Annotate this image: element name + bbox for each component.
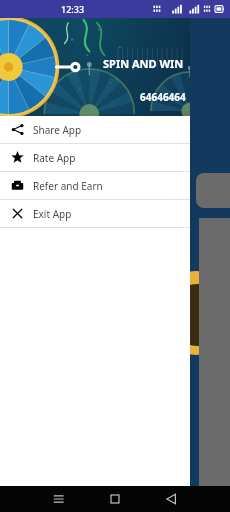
button[interactable]: Rate App	[0, 144, 190, 171]
button[interactable]: Refer and Earn	[0, 172, 190, 199]
staticText: Exit App	[33, 207, 72, 221]
button[interactable]: Exit App	[0, 200, 190, 227]
button[interactable]: Share App	[0, 116, 190, 143]
button[interactable]	[196, 173, 230, 208]
staticText: SPIN AND WIN	[103, 56, 184, 71]
staticText: 64646464	[140, 90, 186, 104]
staticText: Rate App	[33, 151, 76, 165]
staticText: Share App	[33, 123, 82, 137]
staticText: Refer and Earn	[33, 179, 103, 193]
staticText: 12:33	[61, 3, 85, 15]
